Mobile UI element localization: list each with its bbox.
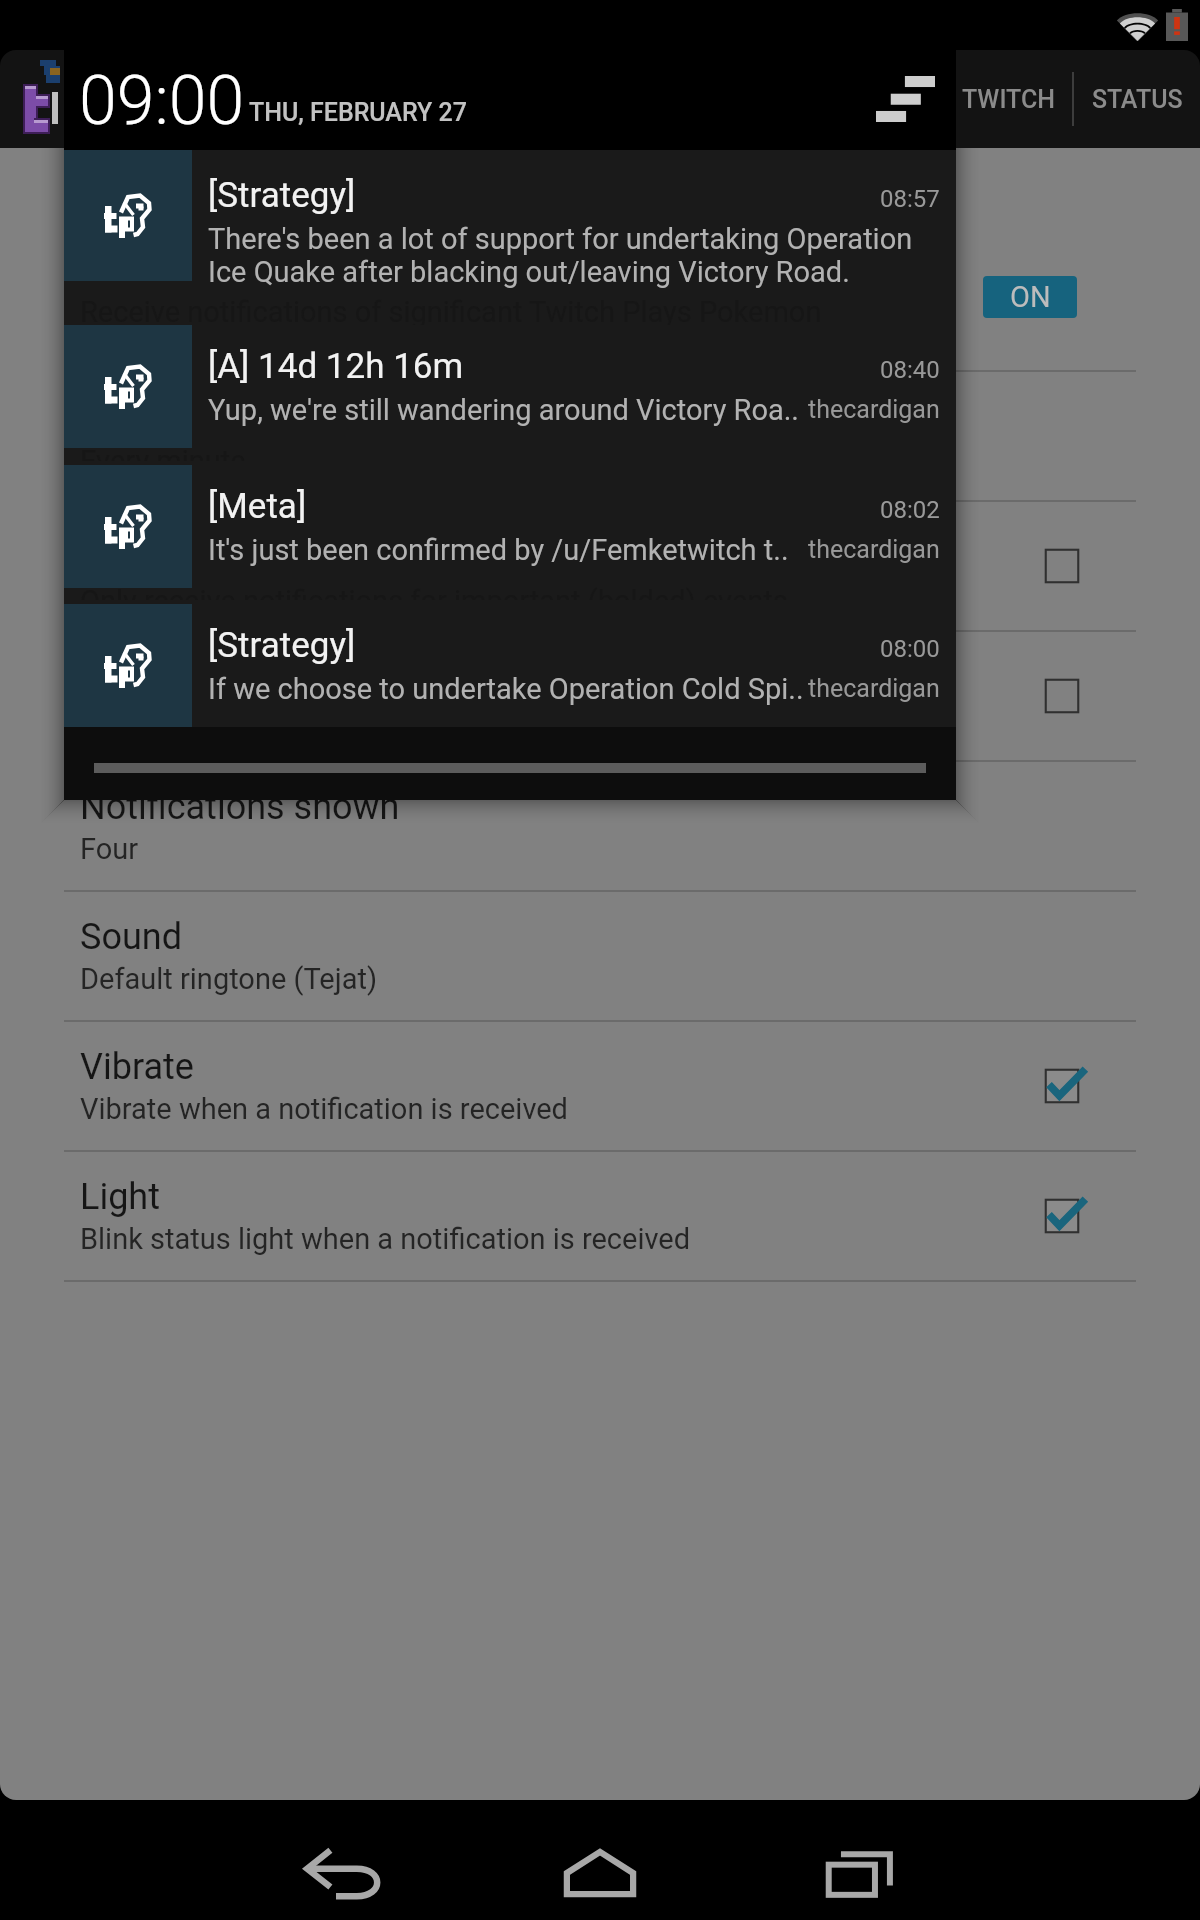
staticText: 08:00 [880, 635, 940, 663]
staticText: 08:40 [880, 356, 940, 384]
staticText: There's been a lot of support for undert… [208, 222, 913, 256]
button[interactable]: Important events only [1030, 534, 1094, 598]
staticText: 09:00 [79, 61, 245, 141]
staticText: Four [80, 832, 139, 866]
button[interactable]: Vibrate [1030, 1054, 1094, 1118]
button[interactable]: Notifications shown [0, 762, 1200, 890]
staticText: thecardigan [808, 395, 940, 424]
button[interactable]: Frequency [0, 372, 1200, 500]
button[interactable]: Sound [0, 892, 1200, 1020]
button[interactable]: Vibrate [0, 1022, 1200, 1150]
button[interactable]: [Strategy] [64, 604, 956, 727]
button[interactable]: STATUS [1074, 50, 1200, 148]
staticText: Important events only [80, 526, 428, 568]
staticText: Every minute [80, 442, 246, 476]
staticText: 08:02 [880, 496, 940, 524]
staticText: STATUS [1092, 85, 1183, 114]
staticText: thecardigan [808, 674, 940, 703]
staticText: Light [80, 1176, 160, 1218]
button[interactable]: Quick settings [876, 76, 935, 122]
staticText: Yup, we're still wandering around Victor… [208, 393, 800, 427]
staticText: Only receive notifications for important… [80, 572, 788, 606]
staticText: It's just been confirmed by /u/Femketwit… [208, 533, 789, 567]
staticText: [Strategy] [208, 175, 356, 216]
staticText: ON [1010, 280, 1051, 314]
staticText: [Meta] [208, 486, 307, 527]
staticText: Receive notifications of non-event updat… [80, 702, 627, 736]
button[interactable]: TWITCH [945, 50, 1072, 148]
button[interactable]: [A] 14d 12h 16m [64, 325, 956, 448]
button[interactable]: ON [983, 276, 1077, 318]
staticText: [Strategy] [208, 625, 356, 666]
button[interactable]: Light [1030, 1184, 1094, 1248]
staticText: Updates [80, 656, 213, 698]
button[interactable]: Updates [0, 632, 1200, 760]
button[interactable]: Twitch Plays notifications [0, 242, 1200, 370]
staticText: TWITCH [962, 85, 1056, 114]
button[interactable]: [Meta] [64, 465, 956, 588]
button[interactable]: Home [520, 1800, 680, 1920]
button[interactable]: Light [0, 1152, 1200, 1280]
staticText: Vibrate when a notification is received [80, 1092, 568, 1126]
staticText: 08:57 [880, 185, 940, 213]
button[interactable]: [Strategy] [64, 150, 956, 293]
button[interactable]: Important events only [0, 502, 1200, 630]
staticText: Notifications shown [80, 786, 400, 828]
button[interactable]: Updates [1030, 664, 1094, 728]
staticText: thecardigan [808, 535, 940, 564]
staticText: Ice Quake after blacking out/leaving Vic… [208, 255, 850, 289]
staticText: Vibrate [80, 1046, 194, 1088]
staticText: Receive notifications of significant Twi… [80, 312, 822, 346]
staticText: Twitch Plays notifications [80, 266, 490, 308]
button[interactable]: Back [264, 1800, 424, 1920]
staticText: Blink status light when a notification i… [80, 1222, 691, 1256]
staticText: Frequency [80, 396, 246, 438]
staticText: Default ringtone (Tejat) [80, 962, 377, 996]
staticText: If we choose to undertake Operation Cold… [208, 672, 804, 706]
staticText: THU, FEBRUARY 27 [249, 98, 467, 127]
staticText: Sound [80, 916, 182, 958]
staticText: Every minute [80, 444, 246, 461]
staticText: Only receive notifications for important… [80, 584, 788, 600]
button[interactable]: Recent apps [780, 1800, 940, 1920]
staticText: [A] 14d 12h 16m [208, 346, 464, 387]
staticText: Receive notifications of significant Twi… [80, 295, 822, 327]
